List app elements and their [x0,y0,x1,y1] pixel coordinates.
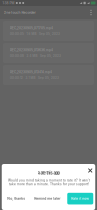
staticText: REC_20230905_071705.mp4 [10,26,53,30]
staticText: REC_20230905_013414.mp4 [10,70,52,74]
button[interactable]: More options [86,6,95,19]
button[interactable]: Remind me later [32,194,62,203]
button[interactable]: REC_20230905_013636.mp4 [3,43,94,63]
button[interactable]: Close [86,166,95,175]
staticText: 00:00:12 [10,76,23,80]
staticText: 00:00:05 [10,32,24,36]
staticText: OneTouch Recorder [3,10,35,14]
button[interactable]: REC_20230905_013414.mp4 [3,65,94,85]
button[interactable]: REC_20230905_071705.mp4 [3,21,94,41]
staticText: Remind me later [34,197,60,201]
button[interactable]: No, thanks [5,194,27,203]
staticText: 1.6 MB [26,32,36,36]
staticText: 3.1 MB [25,76,35,80]
staticText: REC_20230905_013636.mp4 [10,48,53,52]
staticText: Rate it now [71,197,89,201]
staticText: 1:38 PM [2,1,14,5]
staticText: 2.4 MB [26,54,37,58]
staticText: 00:00:08 [10,54,24,58]
staticText: Rate this app [37,171,59,175]
staticText: Sep 05, 2023 [39,32,60,36]
button[interactable]: Rate it now [67,193,93,204]
staticText: Sep 05, 2023 [38,76,59,80]
staticText: Would you mind taking a moment to rate i… [8,178,90,186]
staticText: No, thanks [7,197,25,201]
staticText: Sep 05, 2023 [40,54,61,58]
